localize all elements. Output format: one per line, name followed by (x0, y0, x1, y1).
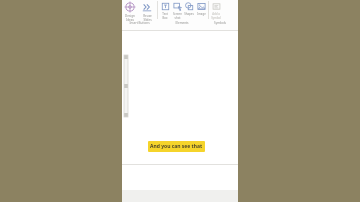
staticText: Insert Buttons (129, 21, 150, 25)
staticText: Design Ideas (125, 14, 135, 22)
staticText: Text Box (162, 12, 168, 19)
other: Add a Symbol (212, 2, 221, 11)
other: Text Box (161, 2, 170, 11)
staticText: Elements (175, 21, 189, 25)
other: Shapes (185, 2, 194, 11)
button[interactable]: Add a Symbol (210, 0, 222, 24)
staticText: Reuse Slides (143, 14, 152, 22)
button[interactable]: Reuse Slides (139, 0, 155, 24)
button[interactable]: Scroll (124, 55, 128, 117)
button[interactable]: And you can see that (148, 141, 205, 152)
staticText: Symbols (214, 21, 226, 25)
staticText: Shapes (184, 12, 194, 16)
button[interactable]: Shapes (183, 0, 195, 24)
other: Image (197, 2, 206, 11)
other: Design Ideas (124, 1, 136, 13)
staticText: Add a Symbol (211, 12, 221, 19)
staticText: Screen shot (173, 12, 182, 19)
staticText: Image (197, 12, 206, 16)
other: Screen shot (173, 2, 182, 11)
button[interactable]: Text Box (159, 0, 171, 24)
button[interactable]: Image (195, 0, 207, 24)
button[interactable]: Design Ideas (122, 0, 138, 24)
button[interactable]: Screen shot (171, 0, 183, 24)
other: Reuse Slides (141, 1, 153, 13)
staticText: And you can see that (150, 143, 203, 150)
